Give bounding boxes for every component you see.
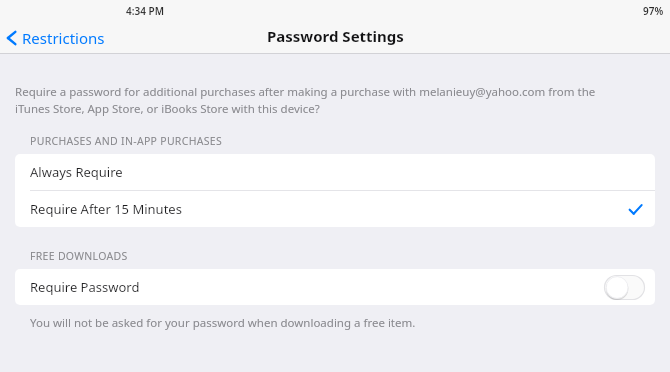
staticText: FREE DOWNLOADS bbox=[30, 249, 128, 263]
button[interactable]: Restrictions bbox=[0, 21, 115, 54]
staticText: Restrictions bbox=[22, 28, 105, 48]
staticText: Require a password for additional purcha… bbox=[15, 84, 607, 116]
staticText: You will not be asked for your password … bbox=[30, 315, 416, 331]
staticText: Always Require bbox=[30, 163, 123, 181]
staticText: Require After 15 Minutes bbox=[30, 200, 182, 218]
staticText: PURCHASES AND IN-APP PURCHASES bbox=[30, 134, 222, 148]
staticText: 97% bbox=[643, 4, 664, 18]
button[interactable]: Require Password bbox=[15, 269, 655, 305]
staticText: Require Password bbox=[30, 278, 140, 296]
staticText: Password Settings bbox=[267, 26, 404, 46]
button[interactable]: Require After 15 Minutes bbox=[15, 191, 655, 227]
staticText: 4:34 PM bbox=[126, 4, 164, 18]
button[interactable]: Always Require bbox=[15, 154, 655, 190]
button[interactable]: Require Password toggle, off bbox=[604, 275, 645, 300]
